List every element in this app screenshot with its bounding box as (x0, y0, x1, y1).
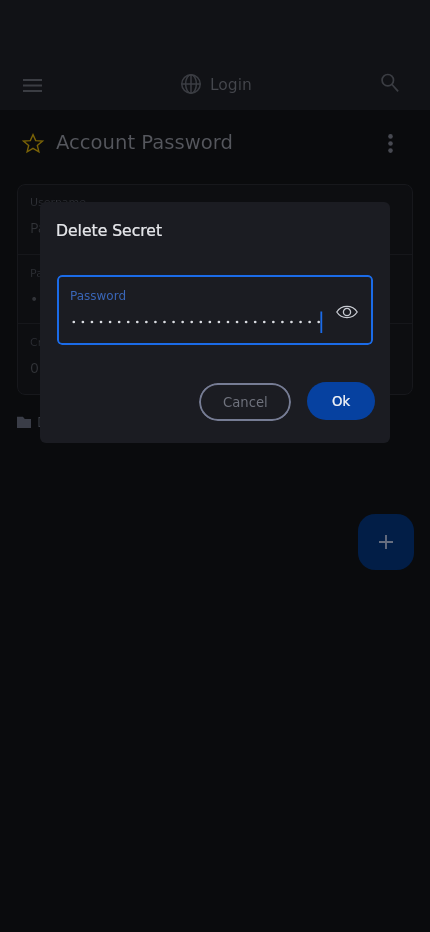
staticText: Username (30, 196, 87, 209)
staticText: Login (210, 76, 252, 94)
staticText: •••••••• (30, 291, 97, 307)
button[interactable]: Search (369, 61, 413, 105)
button[interactable]: Favourite (12, 123, 53, 164)
staticText: Pa55w0rd! (30, 220, 105, 236)
staticText: Password (70, 289, 127, 303)
staticText: Created (30, 336, 74, 349)
staticText: Delete Secret (56, 222, 163, 240)
button[interactable]: Cancel (199, 383, 291, 421)
other: Language (181, 74, 201, 94)
staticText: Default (37, 414, 87, 430)
button[interactable]: Show password (332, 297, 362, 327)
staticText: Ok (332, 394, 351, 409)
button[interactable]: More options (370, 123, 411, 164)
staticText: Password (30, 267, 82, 280)
staticText: Cancel (223, 395, 268, 410)
button[interactable]: Menu (10, 63, 54, 107)
staticText: 01/02/2024 (30, 360, 111, 376)
staticText: Account Password (56, 131, 233, 154)
button[interactable]: Add (358, 514, 414, 570)
button[interactable]: Default (11, 406, 430, 438)
button[interactable]: Ok (307, 382, 375, 420)
